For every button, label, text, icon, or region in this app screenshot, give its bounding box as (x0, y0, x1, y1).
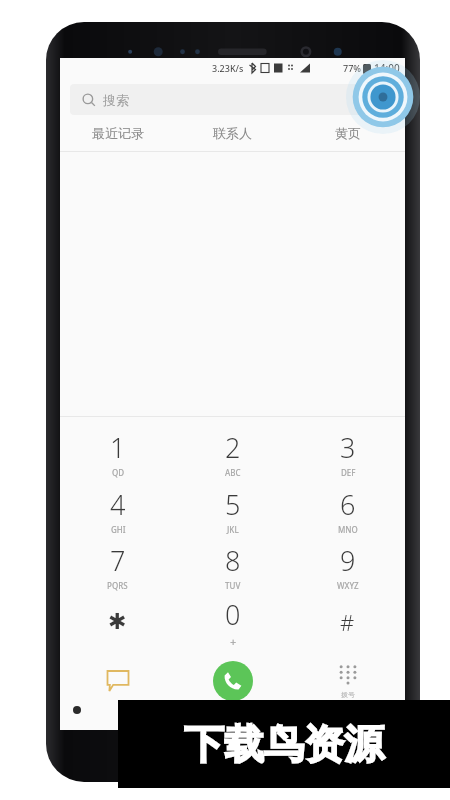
staticText: 4 (110, 486, 126, 523)
staticText: # (340, 607, 355, 637)
staticText: 1 (110, 429, 126, 466)
staticText: 拨号 (341, 690, 355, 699)
button[interactable]: 搜索 (70, 84, 395, 115)
staticText: QD (112, 467, 125, 478)
button[interactable]: 9 (290, 538, 405, 594)
button[interactable]: 2 (175, 425, 290, 482)
button[interactable]: 8 (175, 538, 290, 594)
button[interactable]: Keypad (290, 650, 405, 712)
staticText: WXYZ (337, 580, 359, 591)
staticText: ABC (225, 467, 241, 478)
staticText: 9 (340, 542, 356, 579)
staticText: 3.23K/s (212, 62, 244, 74)
staticText: 联系人 (213, 125, 252, 141)
staticText: 黄页 (335, 125, 361, 141)
staticText: JKL (227, 524, 239, 535)
staticText: 6 (340, 486, 356, 523)
staticText: 3 (340, 429, 356, 466)
staticText: ✱ (108, 609, 127, 635)
staticText: 8 (225, 542, 241, 579)
button[interactable]: 最近记录 (60, 115, 175, 151)
button[interactable]: 3 (290, 425, 405, 482)
staticText: 2 (225, 429, 241, 466)
button[interactable]: Message (60, 650, 175, 712)
staticText: PQRS (107, 580, 128, 591)
staticText: 77% (343, 62, 361, 74)
button[interactable]: # (290, 594, 405, 650)
button[interactable]: 7 (60, 538, 175, 594)
button[interactable]: 0 (175, 594, 290, 650)
staticText: GHI (111, 524, 126, 535)
button[interactable]: Call (175, 650, 290, 712)
button[interactable]: Touch indicator (346, 60, 420, 134)
staticText: TUV (225, 580, 241, 591)
staticText: DEF (341, 467, 356, 478)
button[interactable]: 4 (60, 482, 175, 538)
staticText: 最近记录 (92, 125, 144, 141)
staticText: 5 (225, 486, 241, 523)
staticText: + (230, 634, 237, 649)
staticText: 0 (225, 596, 241, 633)
button[interactable]: 5 (175, 482, 290, 538)
staticText: 搜索 (103, 92, 129, 108)
staticText: 7 (110, 542, 126, 579)
button[interactable]: 联系人 (175, 115, 290, 151)
button[interactable]: 6 (290, 482, 405, 538)
staticText: 14:00 (374, 61, 400, 75)
button[interactable]: ✱ (60, 594, 175, 650)
button[interactable]: 黄页 (290, 115, 405, 151)
staticText: MNO (338, 524, 358, 535)
staticText: 下载鸟资源 (184, 719, 384, 769)
button[interactable]: 1 (60, 425, 175, 482)
